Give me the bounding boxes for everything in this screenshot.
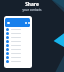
staticText: Share — [25, 1, 39, 8]
button[interactable] — [4, 55, 32, 59]
button[interactable] — [4, 35, 32, 39]
button[interactable] — [5, 18, 30, 27]
button[interactable] — [4, 31, 32, 35]
button[interactable] — [4, 51, 32, 55]
button[interactable] — [4, 27, 32, 31]
staticText: your contacts — [22, 8, 42, 12]
button[interactable] — [4, 47, 32, 51]
button[interactable] — [4, 59, 32, 63]
button[interactable] — [4, 39, 32, 43]
button[interactable] — [4, 43, 32, 47]
